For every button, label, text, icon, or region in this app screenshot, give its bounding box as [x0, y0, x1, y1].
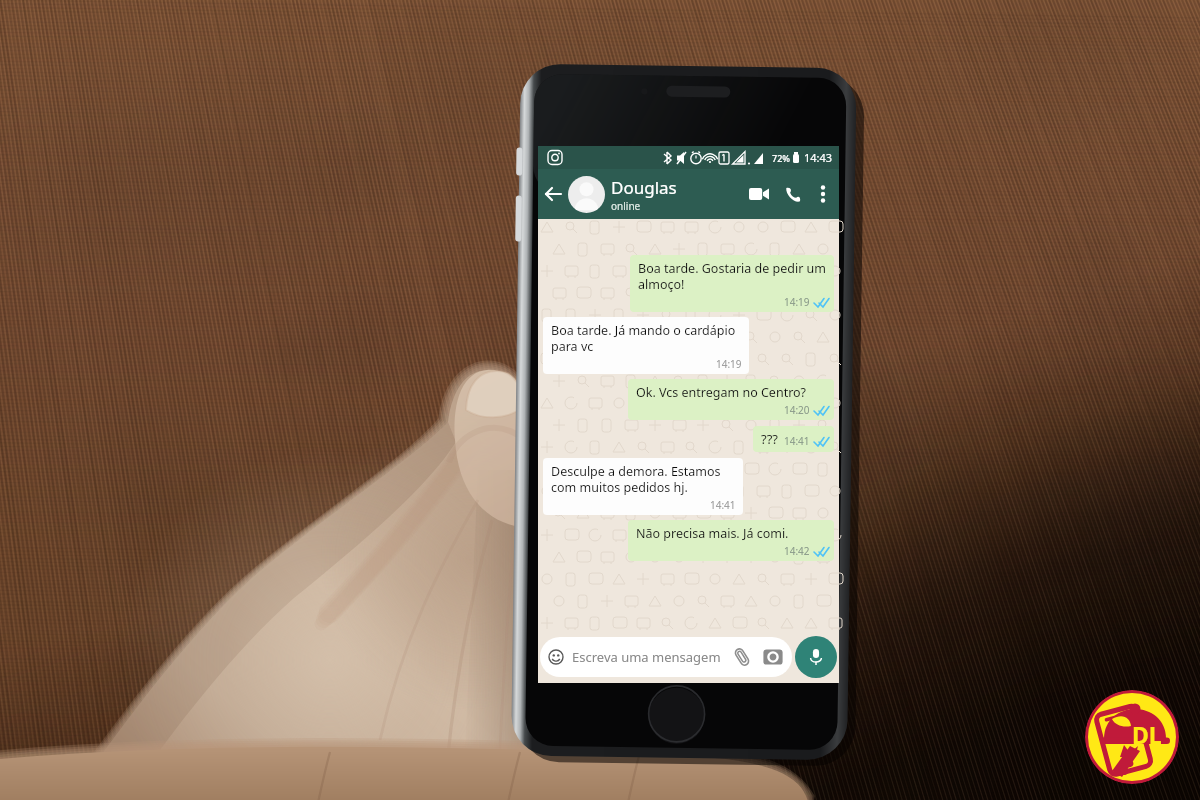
button[interactable]: Attach	[732, 647, 752, 667]
staticText: 72%	[772, 152, 790, 164]
button[interactable]: Escreva uma mensagem	[540, 637, 792, 677]
button[interactable]: Delivery app logo	[1085, 690, 1179, 784]
button[interactable]: ???	[753, 426, 834, 452]
button[interactable]: Douglas	[568, 169, 742, 219]
staticText: 14:41	[710, 498, 736, 512]
staticText: 14:42	[784, 544, 810, 558]
staticText: Não precisa mais. Já comi.	[636, 525, 789, 542]
button[interactable]: Video call	[742, 169, 776, 219]
staticText: Boa tarde. Gostaria de pedir um almoço!	[638, 260, 827, 293]
staticText: Ok. Vcs entregam no Centro?	[636, 384, 807, 401]
staticText: DL	[1132, 719, 1162, 750]
button[interactable]: Back	[538, 169, 568, 219]
staticText: online	[611, 199, 641, 213]
staticText: 14:19	[784, 295, 810, 309]
button[interactable]: Call	[776, 169, 810, 219]
staticText: 14:19	[716, 357, 742, 371]
staticText: Escreva uma mensagem	[572, 648, 721, 666]
staticText: Boa tarde. Já mando o cardápio para vc	[551, 322, 742, 355]
button[interactable]: Ok. Vcs entregam no Centro?	[628, 379, 834, 420]
staticText: 14:41	[784, 434, 810, 448]
button[interactable]: More options	[810, 169, 836, 219]
staticText: Douglas	[611, 176, 677, 199]
staticText: 14:43	[804, 150, 833, 165]
button[interactable]: Boa tarde. Gostaria de pedir um almoço!	[630, 255, 834, 312]
staticText: 14:20	[784, 403, 810, 417]
button[interactable]: Camera	[763, 647, 783, 667]
button[interactable]: Desculpe a demora. Estamos com muitos pe…	[543, 458, 743, 515]
staticText: Desculpe a demora. Estamos com muitos pe…	[551, 463, 736, 496]
staticText: ???	[761, 430, 778, 448]
button[interactable]: Voice message	[795, 636, 837, 678]
button[interactable]: Boa tarde. Já mando o cardápio para vc	[543, 317, 749, 374]
button[interactable]: Não precisa mais. Já comi.	[628, 520, 834, 561]
